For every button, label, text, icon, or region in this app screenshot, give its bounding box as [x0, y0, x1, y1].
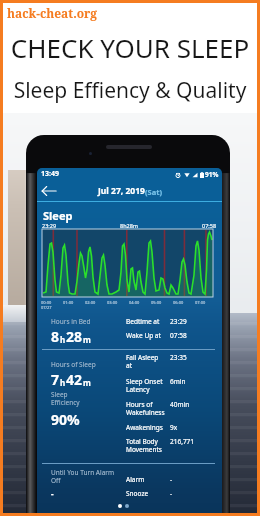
staticText: Hours of Sleep [51, 360, 96, 369]
staticText: 07:00 [195, 300, 206, 305]
staticText: Hours in Bed [51, 317, 91, 326]
staticText: 91% [205, 170, 219, 179]
button[interactable]: Awakenings [126, 423, 216, 432]
staticText: Sleep Effiency & Quality [0, 76, 260, 105]
staticText: Wake Up at [126, 331, 170, 340]
staticText: Bedtime at [126, 317, 170, 326]
staticText: 90% [51, 410, 80, 429]
staticText: Until You Turn Alarm Off [51, 468, 115, 485]
staticText: CHECK YOUR SLEEP [0, 30, 260, 65]
button[interactable]: Sleep Onset Latency [126, 377, 216, 394]
button[interactable]: Fall Asleep at [126, 353, 216, 370]
button[interactable]: Wake Up at [126, 331, 216, 340]
staticText: Sleep Efficiency [51, 390, 80, 407]
staticText: 23:29 [170, 317, 187, 326]
staticText: 05:00 [151, 300, 162, 305]
staticText: 8h28m [120, 222, 138, 229]
staticText: h [60, 334, 66, 345]
staticText: 04:00 [129, 300, 140, 305]
staticText: 23:29 [42, 222, 57, 229]
staticText: hack-cheat.org [7, 5, 98, 21]
button[interactable]: Hours of Wakefulness [126, 400, 216, 417]
staticText: Sleep [43, 208, 73, 223]
staticText: Sleep Onset Latency [126, 377, 170, 394]
staticText: 07:58 [170, 331, 187, 340]
button[interactable]: Back [39, 182, 59, 200]
button[interactable]: Alarm [126, 475, 216, 484]
staticText: Snooze [126, 489, 170, 498]
staticText: 13:49 [41, 169, 59, 179]
staticText: 42 [66, 370, 83, 389]
staticText: Total Body Movements [126, 437, 170, 454]
button[interactable]: Bedtime at [126, 317, 216, 326]
staticText: - [170, 489, 173, 498]
staticText: (Sat) [145, 187, 162, 197]
staticText: Fall Asleep at [126, 353, 170, 370]
staticText: 8 [51, 327, 60, 346]
staticText: 6min [170, 377, 186, 386]
staticText: 9x [170, 423, 178, 432]
staticText: 07/27 [41, 305, 52, 310]
staticText: Jul 27, 2019 [98, 185, 145, 197]
staticText: 28 [66, 327, 83, 346]
staticText: 02:00 [85, 300, 96, 305]
button[interactable]: Total Body Movements [126, 437, 216, 454]
staticText: m [83, 334, 91, 345]
staticText: - [170, 475, 173, 484]
button[interactable]: Snooze [126, 489, 216, 498]
staticText: m [83, 377, 91, 388]
staticText: Hours of Wakefulness [126, 400, 170, 417]
staticText: Alarm [126, 475, 170, 484]
staticText: 23:35 [170, 353, 187, 362]
staticText: 7 [51, 370, 60, 389]
staticText: 06:00 [173, 300, 184, 305]
staticText: 00:00 [41, 300, 52, 305]
staticText: 03:00 [107, 300, 118, 305]
staticText: 216,771 [170, 437, 195, 446]
staticText: 01:00 [63, 300, 74, 305]
staticText: 40min [170, 400, 190, 409]
staticText: 07:58 [202, 222, 217, 229]
staticText: Awakenings [126, 423, 170, 432]
staticText: h [60, 377, 66, 388]
staticText: - [51, 488, 54, 499]
